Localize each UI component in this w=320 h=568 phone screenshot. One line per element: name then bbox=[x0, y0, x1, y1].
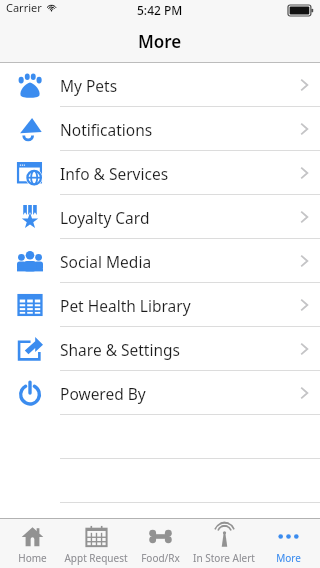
button[interactable]: Powered By bbox=[0, 371, 320, 415]
staticText: Social Media bbox=[60, 251, 152, 272]
staticText: Powered By bbox=[60, 383, 146, 404]
button[interactable]: More bbox=[256, 519, 320, 568]
button[interactable]: Social Media bbox=[0, 239, 320, 283]
button[interactable]: Appt Request bbox=[64, 519, 128, 568]
staticText: 5:42 PM bbox=[137, 2, 183, 18]
staticText: In Store Alert bbox=[193, 551, 255, 565]
button[interactable]: Info & Services bbox=[0, 151, 320, 195]
staticText: Food/Rx bbox=[141, 551, 180, 565]
staticText: Carrier bbox=[6, 0, 42, 15]
staticText: More bbox=[276, 551, 301, 565]
button[interactable]: In Store Alert bbox=[192, 519, 256, 568]
staticText: Appt Request bbox=[64, 551, 128, 565]
button[interactable]: Share & Settings bbox=[0, 327, 320, 371]
button[interactable]: Food/Rx bbox=[128, 519, 192, 568]
button[interactable]: Loyalty Card bbox=[0, 195, 320, 239]
staticText: Share & Settings bbox=[60, 339, 181, 360]
button[interactable]: Home bbox=[0, 519, 64, 568]
staticText: Notifications bbox=[60, 119, 153, 140]
staticText: Pet Health Library bbox=[60, 295, 191, 316]
button[interactable]: Notifications bbox=[0, 107, 320, 151]
staticText: Loyalty Card bbox=[60, 207, 150, 228]
staticText: Home bbox=[18, 551, 47, 565]
staticText: More bbox=[138, 30, 182, 53]
staticText: Info & Services bbox=[60, 163, 169, 184]
staticText: My Pets bbox=[60, 75, 118, 96]
button[interactable]: Pet Health Library bbox=[0, 283, 320, 327]
button[interactable]: My Pets bbox=[0, 63, 320, 107]
